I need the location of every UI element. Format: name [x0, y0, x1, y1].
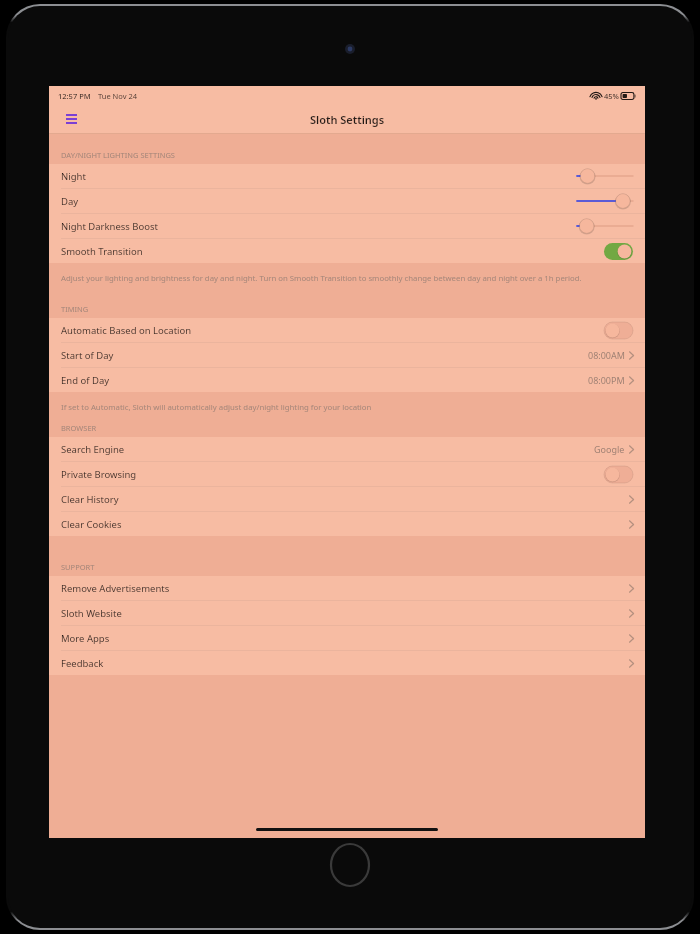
staticText: More Apps	[61, 632, 110, 645]
button[interactable]: Private Browsing	[49, 462, 645, 486]
staticText: Day	[61, 195, 79, 208]
staticText: Automatic Based on Location	[61, 324, 192, 337]
staticText: 12:57 PM	[58, 91, 91, 101]
staticText: SUPPORT	[61, 562, 95, 572]
staticText: Adjust your lighting and brightness for …	[61, 273, 582, 284]
staticText: Start of Day	[61, 349, 114, 362]
staticText: Smooth Transition	[61, 245, 143, 258]
staticText: Tue Nov 24	[98, 91, 138, 101]
button[interactable]: Menu	[59, 107, 83, 131]
button[interactable]: Start of Day	[49, 343, 645, 367]
staticText: DAY/NIGHT LIGHTING SETTINGS	[61, 150, 175, 160]
button[interactable]: Clear Cookies	[49, 512, 645, 536]
staticText: TIMING	[61, 304, 89, 314]
button[interactable]: Feedback	[49, 651, 645, 675]
staticText: Sloth Website	[61, 607, 122, 620]
staticText: BROWSER	[61, 423, 97, 433]
button[interactable]: Search Engine	[49, 437, 645, 461]
button[interactable]: Smooth Transition	[49, 239, 645, 263]
staticText: If set to Automatic, Sloth will automati…	[61, 402, 372, 413]
button[interactable]: Clear History	[49, 487, 645, 511]
staticText: Private Browsing	[61, 468, 137, 481]
button[interactable]: More Apps	[49, 626, 645, 650]
staticText: 45%	[604, 91, 619, 101]
staticText: Night Darkness Boost	[61, 220, 158, 233]
staticText: Night	[61, 170, 86, 183]
staticText: Google	[594, 443, 625, 455]
staticText: End of Day	[61, 374, 110, 387]
staticText: Search Engine	[61, 443, 125, 456]
button[interactable]: Day	[49, 189, 645, 213]
staticText: Clear Cookies	[61, 518, 122, 531]
button[interactable]: Automatic Based on Location	[49, 318, 645, 342]
staticText: Feedback	[61, 657, 104, 670]
button[interactable]: End of Day	[49, 368, 645, 392]
staticText: Clear History	[61, 493, 119, 506]
staticText: 08:00AM	[588, 349, 625, 361]
button[interactable]: Sloth Website	[49, 601, 645, 625]
button[interactable]: Night	[49, 164, 645, 188]
staticText: 08:00PM	[588, 374, 625, 386]
staticText: Remove Advertisements	[61, 582, 170, 595]
button[interactable]: Remove Advertisements	[49, 576, 645, 600]
staticText: Sloth Settings	[310, 112, 385, 127]
button[interactable]: Night Darkness Boost	[49, 214, 645, 238]
